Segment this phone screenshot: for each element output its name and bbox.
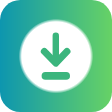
button[interactable]: Download	[0, 0, 112, 112]
